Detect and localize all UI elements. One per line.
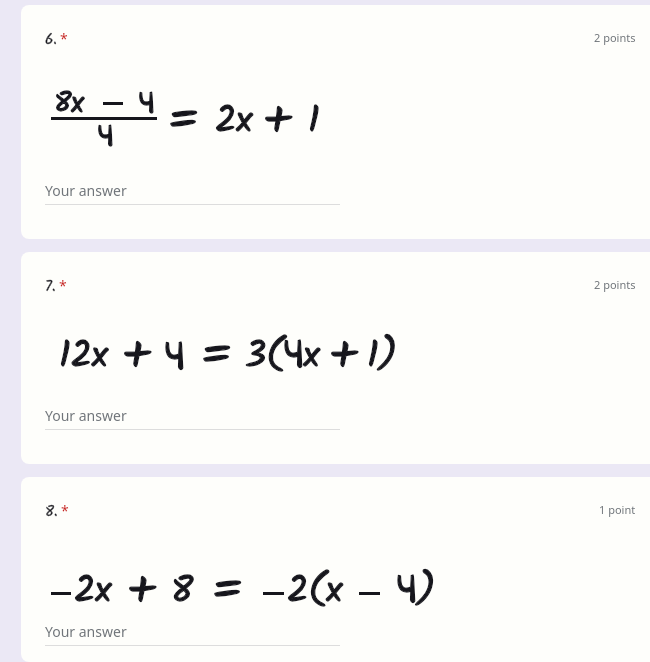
staticText: 2 points <box>594 277 636 292</box>
staticText: ч <box>98 117 114 157</box>
staticText: 1 <box>308 93 320 152</box>
staticText: = <box>168 84 199 161</box>
staticText: Your answer <box>45 622 127 641</box>
staticText: 2x <box>215 93 253 152</box>
staticText: 2x <box>74 563 112 622</box>
staticText: = <box>168 84 199 161</box>
staticText: Your answer <box>45 181 127 200</box>
staticText: 8. <box>45 500 58 524</box>
staticText: 1) <box>367 328 398 387</box>
staticText: 2(x <box>287 563 343 622</box>
staticText: 6. <box>45 28 57 52</box>
staticText: 1) <box>367 328 398 387</box>
staticText: + <box>127 554 156 631</box>
staticText: 1 point <box>599 502 636 517</box>
staticText: 1 <box>308 93 320 152</box>
staticText: 6. <box>45 28 57 52</box>
staticText: + <box>122 319 151 396</box>
staticText: = <box>212 554 243 631</box>
button[interactable]: 6. <box>21 5 650 239</box>
staticText: + <box>329 319 358 396</box>
button[interactable]: 8. <box>21 477 650 662</box>
staticText: ч <box>98 117 114 157</box>
staticText: ч) <box>397 563 436 622</box>
staticText: 3(чx <box>245 328 320 387</box>
staticText: 8 <box>171 563 194 622</box>
staticText: 12x <box>59 328 108 387</box>
staticText: + <box>263 84 292 161</box>
staticText: ч <box>165 332 185 383</box>
staticText: = <box>212 554 243 631</box>
staticText: 2x <box>74 563 112 622</box>
staticText: + <box>329 319 358 396</box>
staticText: 2 points <box>594 30 636 45</box>
button[interactable]: 7. <box>21 252 650 464</box>
staticText: 12x <box>59 328 108 387</box>
staticText: 8. <box>45 500 58 524</box>
staticText: ч) <box>397 563 436 622</box>
staticText: 8x <box>54 81 84 127</box>
staticText: 3(чx <box>245 328 320 387</box>
staticText: * <box>60 29 68 48</box>
staticText: 8x <box>54 81 84 127</box>
staticText: 2(x <box>287 563 343 622</box>
staticText: 7. <box>45 275 56 299</box>
staticText: + <box>263 84 292 161</box>
staticText: = <box>201 319 232 396</box>
staticText: * <box>61 501 69 520</box>
staticText: 2x <box>215 93 253 152</box>
staticText: * <box>59 276 67 295</box>
staticText: 8 <box>171 563 194 622</box>
staticText: = <box>201 319 232 396</box>
staticText: 7. <box>45 275 56 299</box>
staticText: + <box>127 554 156 631</box>
staticText: + <box>122 319 151 396</box>
staticText: ч <box>139 84 155 124</box>
staticText: ч <box>139 84 155 124</box>
staticText: ч <box>165 332 185 383</box>
staticText: Your answer <box>45 406 127 425</box>
